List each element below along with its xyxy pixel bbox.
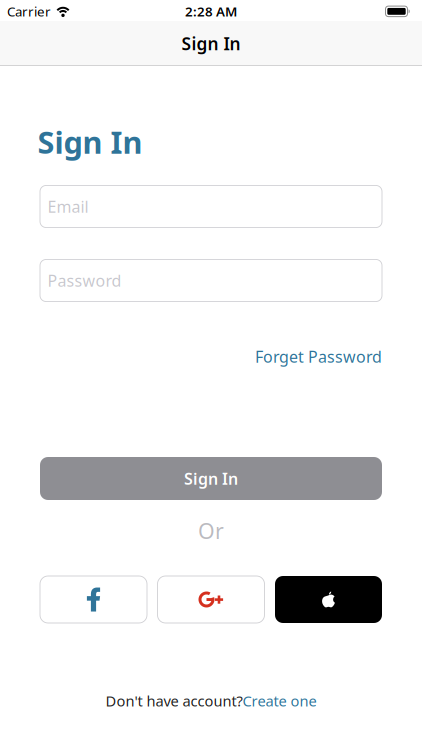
button[interactable]: Forget Password (255, 346, 382, 367)
staticText: Password (47, 270, 121, 291)
button[interactable]: Sign In (40, 457, 382, 500)
staticText: Or (198, 516, 224, 545)
button[interactable]: Sign in with Google (157, 576, 264, 623)
button[interactable]: Sign in with Facebook (40, 576, 147, 623)
button[interactable]: Email (40, 185, 382, 227)
staticText: Create one (242, 691, 316, 710)
button[interactable]: Sign in with Apple (275, 576, 382, 623)
staticText: Carrier (7, 2, 51, 20)
button[interactable]: Password (40, 259, 382, 301)
staticText: Email (47, 196, 88, 217)
staticText: 2:28 AM (185, 2, 237, 20)
staticText: Sign In (184, 468, 238, 489)
staticText: Sign In (37, 121, 142, 162)
staticText: Don't have account? (105, 691, 242, 710)
staticText: Sign In (181, 32, 240, 55)
staticText: Forget Password (255, 346, 382, 367)
button[interactable]: Create one (242, 691, 316, 710)
